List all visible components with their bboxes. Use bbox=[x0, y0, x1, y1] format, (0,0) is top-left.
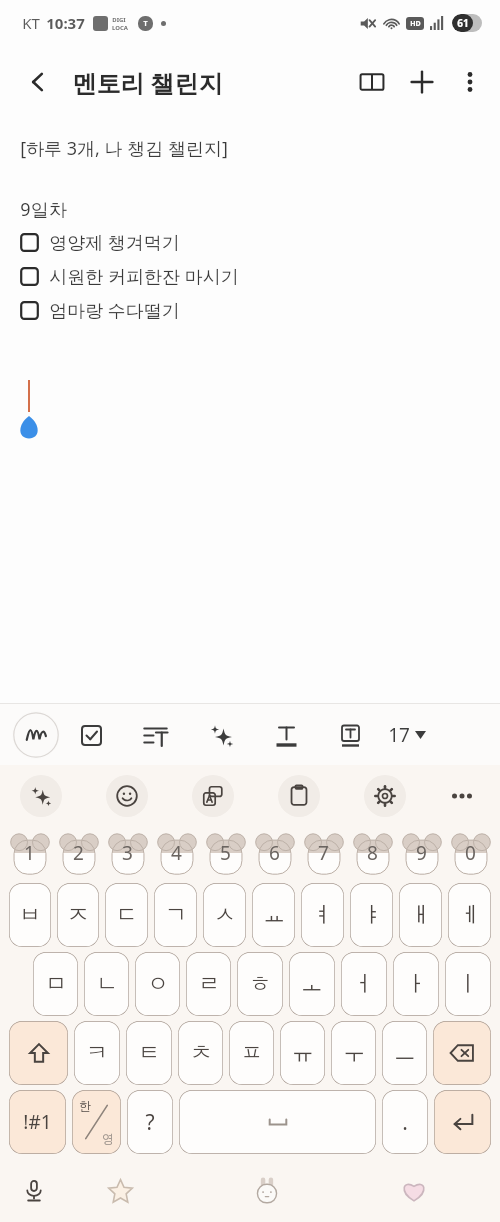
button[interactable]: ㅅ bbox=[203, 883, 246, 947]
staticText: LOCA bbox=[112, 24, 128, 31]
button[interactable]: !#1 bbox=[9, 1090, 66, 1154]
button[interactable]: ㅇ bbox=[135, 952, 180, 1016]
button[interactable]: Space bbox=[179, 1090, 376, 1154]
button[interactable]: 2 bbox=[54, 827, 103, 879]
button[interactable]: ㅑ bbox=[350, 883, 393, 947]
staticText: ㅌ bbox=[138, 1039, 160, 1067]
button[interactable]: ㅜ bbox=[331, 1021, 376, 1085]
button[interactable]: More bbox=[444, 778, 480, 814]
button[interactable]: 9 bbox=[397, 827, 446, 879]
staticText: KT bbox=[22, 13, 40, 33]
staticText: ㄱ bbox=[165, 901, 187, 929]
button[interactable]: ㅡ bbox=[382, 1021, 427, 1085]
button[interactable]: 1 bbox=[5, 827, 54, 879]
button[interactable]: ㅕ bbox=[301, 883, 344, 947]
staticText: ㅅ bbox=[214, 901, 236, 929]
button[interactable]: ㅌ bbox=[126, 1021, 172, 1085]
button[interactable]: 5 bbox=[201, 827, 250, 879]
button[interactable]: ㅂ bbox=[9, 883, 51, 947]
staticText: 1 bbox=[24, 840, 35, 866]
staticText: ㅜ bbox=[343, 1039, 365, 1067]
staticText: HD bbox=[410, 19, 421, 29]
staticText: 9 bbox=[416, 840, 427, 866]
button[interactable]: Settings bbox=[364, 775, 406, 817]
staticText: 한 bbox=[79, 1098, 91, 1113]
button[interactable]: Reading view bbox=[348, 58, 396, 106]
staticText: 9일차 bbox=[20, 197, 67, 222]
button[interactable]: Enter bbox=[434, 1090, 491, 1154]
button[interactable]: ㅐ bbox=[399, 883, 442, 947]
staticText: ㅠ bbox=[292, 1039, 314, 1067]
button[interactable]: Text style bbox=[254, 706, 318, 764]
staticText: ㅏ bbox=[405, 970, 427, 998]
button[interactable]: ㅣ bbox=[445, 952, 491, 1016]
button[interactable]: 4 bbox=[152, 827, 201, 879]
button[interactable]: Favorites bbox=[96, 1167, 144, 1215]
staticText: 61 bbox=[457, 16, 469, 30]
button[interactable]: 17 bbox=[382, 722, 426, 748]
button[interactable]: Clipboard bbox=[278, 775, 320, 817]
button[interactable]: Add bbox=[396, 56, 448, 108]
staticText: 엄마랑 수다떨기 bbox=[49, 298, 180, 323]
staticText: ㅐ bbox=[410, 901, 432, 929]
button[interactable]: ㅈ bbox=[57, 883, 99, 947]
button[interactable]: ㅋ bbox=[74, 1021, 120, 1085]
button[interactable]: Checklist bbox=[60, 706, 122, 764]
button[interactable]: ㅏ bbox=[393, 952, 439, 1016]
button[interactable]: AI suggest bbox=[20, 775, 62, 817]
button[interactable]: Handwriting bbox=[12, 711, 60, 759]
staticText: 5 bbox=[220, 840, 231, 866]
button[interactable]: 6 bbox=[250, 827, 299, 879]
button[interactable]: 영양제 챙겨먹기 bbox=[20, 230, 180, 255]
button[interactable]: AI assist bbox=[188, 706, 254, 764]
button[interactable]: 시원한 커피한잔 마시기 bbox=[20, 264, 239, 289]
button[interactable]: 엄마랑 수다떨기 bbox=[20, 298, 180, 323]
staticText: 8 bbox=[367, 840, 378, 866]
staticText: 멘토리 챌린지 bbox=[72, 66, 223, 99]
button[interactable]: ㅊ bbox=[178, 1021, 223, 1085]
button[interactable]: Back bbox=[14, 58, 62, 106]
staticText: ㅑ bbox=[361, 901, 383, 929]
button[interactable]: ㅁ bbox=[33, 952, 78, 1016]
staticText: ㅈ bbox=[67, 901, 89, 929]
button[interactable]: ㅗ bbox=[289, 952, 335, 1016]
staticText: 4 bbox=[171, 840, 182, 866]
staticText: 영양제 챙겨먹기 bbox=[49, 230, 180, 255]
button[interactable]: ㅍ bbox=[229, 1021, 274, 1085]
button[interactable]: 8 bbox=[348, 827, 397, 879]
staticText: ㅗ bbox=[301, 970, 323, 998]
button[interactable]: Paragraph bbox=[122, 706, 188, 764]
button[interactable]: 7 bbox=[299, 827, 348, 879]
button[interactable]: Backspace bbox=[433, 1021, 491, 1085]
button[interactable]: . bbox=[382, 1090, 428, 1154]
staticText: ㅍ bbox=[241, 1039, 263, 1067]
button[interactable]: ㄴ bbox=[84, 952, 129, 1016]
button[interactable]: ㅎ bbox=[237, 952, 283, 1016]
button[interactable]: ㅓ bbox=[341, 952, 387, 1016]
button[interactable]: ? bbox=[127, 1090, 173, 1154]
button[interactable]: Voice input bbox=[10, 1167, 58, 1215]
button[interactable]: 0 bbox=[446, 827, 495, 879]
staticText: ㅇ bbox=[147, 970, 169, 998]
button[interactable]: ㄹ bbox=[186, 952, 231, 1016]
button[interactable]: ㄷ bbox=[105, 883, 148, 947]
button[interactable]: 3 bbox=[103, 827, 152, 879]
button[interactable]: Emoji bbox=[106, 775, 148, 817]
button[interactable]: ㅛ bbox=[252, 883, 295, 947]
button[interactable]: Sticker bbox=[243, 1167, 291, 1215]
staticText: ㅁ bbox=[45, 970, 67, 998]
staticText: ㅂ bbox=[19, 901, 41, 929]
button[interactable]: Text box bbox=[318, 706, 382, 764]
staticText: [하루 3개, 나 챙김 챌린지] bbox=[20, 136, 228, 161]
button[interactable]: ㅠ bbox=[280, 1021, 325, 1085]
button[interactable]: Hearts bbox=[390, 1167, 438, 1215]
button[interactable]: ㅔ bbox=[448, 883, 491, 947]
button[interactable]: More options bbox=[448, 60, 492, 104]
staticText: ㄷ bbox=[116, 901, 138, 929]
button[interactable]: Korean English toggle bbox=[72, 1090, 121, 1154]
button[interactable]: Shift bbox=[9, 1021, 68, 1085]
staticText: ㅎ bbox=[249, 970, 271, 998]
staticText: 시원한 커피한잔 마시기 bbox=[49, 264, 239, 289]
button[interactable]: ㄱ bbox=[154, 883, 197, 947]
button[interactable]: Translate bbox=[192, 775, 234, 817]
